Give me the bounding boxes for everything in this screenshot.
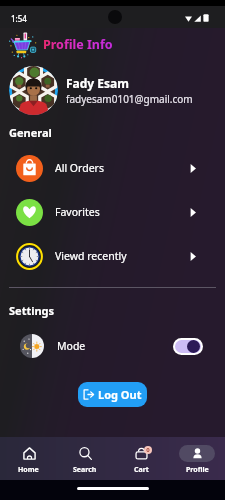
staticText: fadyesam0101@gmail.com: [66, 92, 193, 106]
staticText: General: [9, 125, 52, 140]
button[interactable]: 0: [113, 437, 169, 480]
button[interactable]: All Orders: [0, 146, 225, 190]
staticText: Viewd recently: [55, 249, 127, 263]
staticText: Cart: [134, 465, 149, 475]
staticText: Mode: [57, 339, 86, 353]
staticText: Home: [18, 465, 39, 475]
staticText: Fady Esam: [66, 75, 129, 91]
staticText: Favorites: [55, 205, 100, 219]
staticText: 0: [146, 446, 150, 454]
staticText: Settings: [9, 303, 55, 318]
button[interactable]: Profile: [169, 437, 225, 480]
button[interactable]: Search: [57, 437, 113, 480]
staticText: Profile: [186, 465, 209, 475]
button[interactable]: Log Out: [78, 382, 147, 407]
button[interactable]: Fady Esam: [9, 66, 225, 115]
button[interactable]: Favorites: [0, 190, 225, 234]
staticText: Log Out: [98, 387, 142, 402]
button[interactable]: Home: [0, 437, 57, 480]
button[interactable]: Dark mode toggle: [175, 340, 201, 353]
staticText: Profile Info: [43, 36, 113, 53]
button[interactable]: Viewd recently: [0, 234, 225, 278]
staticText: 1:54: [11, 13, 27, 24]
staticText: Search: [73, 465, 97, 475]
staticText: All Orders: [55, 161, 104, 175]
